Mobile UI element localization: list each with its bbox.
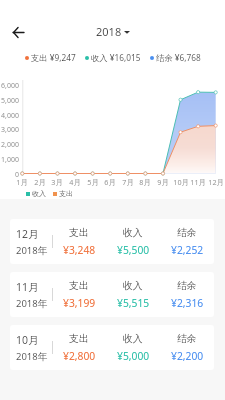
staticText: ¥2,200 <box>171 349 204 363</box>
staticText: 9月 <box>157 177 169 187</box>
staticText: 8月 <box>139 177 151 187</box>
staticText: 收入 ¥16,015 <box>91 52 141 63</box>
button[interactable]: 10月 <box>10 325 214 370</box>
button[interactable]: Back <box>3 17 33 47</box>
staticText: ¥2,800 <box>63 349 96 363</box>
staticText: 结余 <box>177 280 197 292</box>
staticText: 支出 <box>69 280 89 292</box>
staticText: 6,000 <box>1 81 19 91</box>
staticText: ¥2,252 <box>171 243 204 257</box>
staticText: 结余 <box>177 227 197 239</box>
staticText: 6月 <box>104 177 116 187</box>
staticText: 2018年 <box>16 244 48 257</box>
staticText: 3月 <box>51 177 63 187</box>
staticText: 结余 ¥6,768 <box>156 52 201 63</box>
staticText: 11月 <box>190 177 206 187</box>
staticText: 支出 <box>69 227 89 239</box>
staticText: ¥3,199 <box>63 296 96 310</box>
staticText: 收入 <box>123 227 143 239</box>
staticText: 2,000 <box>1 140 19 150</box>
staticText: 结余 <box>177 333 197 345</box>
staticText: 2018年 <box>16 350 48 363</box>
staticText: 5,000 <box>1 96 19 106</box>
staticText: 1,000 <box>1 155 19 165</box>
staticText: 12月 <box>16 227 39 241</box>
staticText: ¥2,316 <box>171 296 204 310</box>
staticText: 支出 ¥9,247 <box>31 52 76 63</box>
button[interactable]: 11月 <box>10 272 214 317</box>
staticText: 收入 <box>123 280 143 292</box>
staticText: 1月 <box>16 177 28 187</box>
staticText: 12月 <box>208 177 224 187</box>
staticText: 支出 <box>59 189 73 198</box>
staticText: ¥5,000 <box>117 349 150 363</box>
staticText: 收入 <box>123 333 143 345</box>
staticText: 10月 <box>173 177 189 187</box>
staticText: 收入 <box>32 189 46 198</box>
staticText: ¥5,500 <box>117 243 150 257</box>
staticText: 3,000 <box>1 125 19 135</box>
staticText: 0 <box>14 170 19 180</box>
staticText: 2018年 <box>16 297 48 310</box>
staticText: ¥5,515 <box>117 296 150 310</box>
button[interactable]: 12月 <box>10 219 214 264</box>
staticText: 4月 <box>69 177 81 187</box>
staticText: 10月 <box>16 333 39 347</box>
staticText: 7月 <box>122 177 134 187</box>
staticText: 2018 <box>96 24 122 39</box>
staticText: ¥3,248 <box>63 243 96 257</box>
staticText: 支出 <box>69 333 89 345</box>
staticText: 5月 <box>87 177 99 187</box>
button[interactable]: 2018 <box>96 24 130 39</box>
staticText: 4,000 <box>1 111 19 121</box>
staticText: 2月 <box>34 177 46 187</box>
staticText: 11月 <box>16 280 39 294</box>
